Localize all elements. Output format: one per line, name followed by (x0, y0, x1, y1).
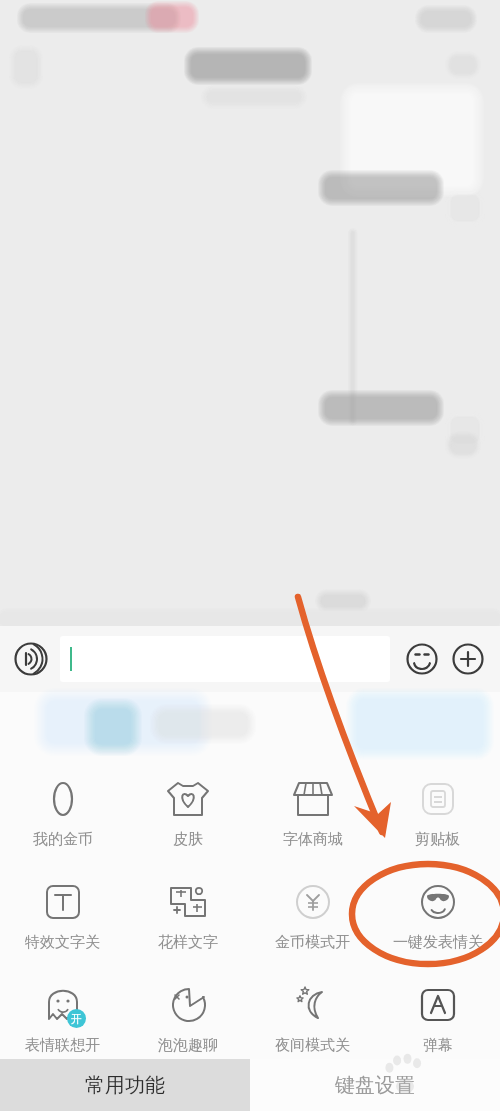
button[interactable]: More (448, 639, 488, 679)
staticText: 金币模式开 (275, 933, 350, 952)
staticText: 开 (71, 1012, 82, 1026)
button[interactable]: 键盘设置 (250, 1059, 500, 1111)
button[interactable]: Emoji (402, 639, 442, 679)
staticText: 常用功能 (85, 1073, 165, 1098)
staticText: 特效文字关 (25, 933, 100, 952)
button[interactable]: 一键发表情关 (375, 867, 500, 970)
button[interactable]: 特效文字关 (0, 867, 125, 970)
staticText: 泡泡趣聊 (158, 1036, 218, 1055)
button[interactable]: 金币模式开 (250, 867, 375, 970)
button[interactable] (60, 636, 390, 682)
staticText: 键盘设置 (335, 1073, 415, 1098)
button[interactable]: 字体商城 (250, 764, 375, 867)
button[interactable]: 常用功能 (0, 1059, 250, 1111)
button[interactable]: Voice input (12, 640, 50, 678)
staticText: 剪贴板 (415, 830, 460, 849)
staticText: 表情联想开 (25, 1036, 100, 1055)
staticText: 一键发表情关 (393, 933, 483, 952)
button[interactable]: 开 (0, 970, 125, 1059)
staticText: 皮肤 (173, 830, 203, 849)
button[interactable]: 皮肤 (125, 764, 250, 867)
staticText: 弹幕 (423, 1036, 453, 1055)
button[interactable]: 夜间模式关 (250, 970, 375, 1059)
button[interactable]: 我的金币 (0, 764, 125, 867)
button[interactable]: 泡泡趣聊 (125, 970, 250, 1059)
button[interactable]: 弹幕 (375, 970, 500, 1059)
staticText: 花样文字 (158, 933, 218, 952)
staticText: 字体商城 (283, 830, 343, 849)
staticText: 夜间模式关 (275, 1036, 350, 1055)
staticText: 我的金币 (33, 830, 93, 849)
button[interactable]: 剪贴板 (375, 764, 500, 867)
button[interactable]: 花样文字 (125, 867, 250, 970)
